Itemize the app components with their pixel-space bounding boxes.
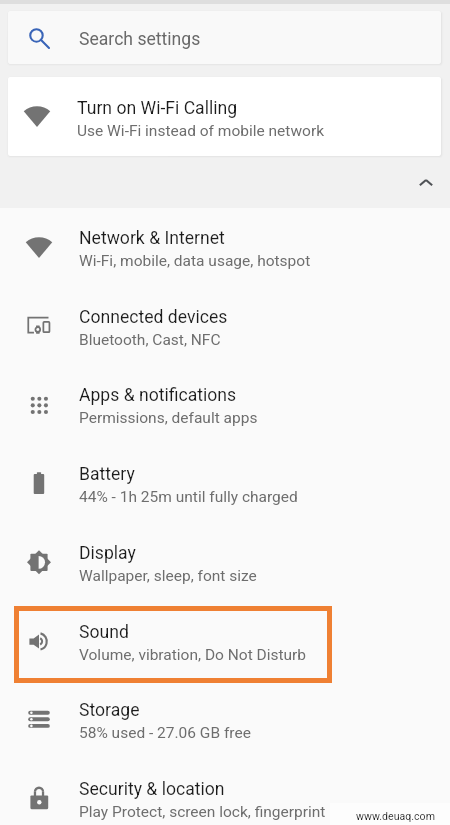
button[interactable]: Security & location xyxy=(0,759,450,825)
staticText: 44% - 1h 25m until fully charged xyxy=(79,488,298,506)
button[interactable]: Display xyxy=(0,523,450,602)
button[interactable]: Battery xyxy=(0,444,450,523)
staticText: Search settings xyxy=(79,29,201,50)
staticText: Sound xyxy=(79,622,129,643)
staticText: Network & Internet xyxy=(79,228,225,249)
staticText: Wi-Fi, mobile, data usage, hotspot xyxy=(79,252,311,270)
staticText: Apps & notifications xyxy=(79,385,237,406)
staticText: Volume, vibration, Do Not Disturb xyxy=(79,646,307,664)
button[interactable]: Sound xyxy=(0,602,450,681)
staticText: Connected devices xyxy=(79,307,228,328)
button[interactable]: Search settings xyxy=(8,11,441,64)
staticText: Turn on Wi-Fi Calling xyxy=(77,98,238,119)
button[interactable]: Connected devices xyxy=(0,287,450,366)
button[interactable]: Network & Internet xyxy=(0,208,450,287)
staticText: 58% used - 27.06 GB free xyxy=(79,724,251,742)
staticText: Play Protect, screen lock, fingerprint xyxy=(79,803,326,821)
button[interactable]: Collapse xyxy=(406,163,446,203)
button[interactable]: Turn on Wi-Fi Calling xyxy=(8,77,441,156)
staticText: Display xyxy=(79,543,136,564)
staticText: Use Wi-Fi instead of mobile network xyxy=(77,122,324,140)
staticText: Wallpaper, sleep, font size xyxy=(79,567,257,585)
staticText: www.deuaq.com xyxy=(356,810,435,822)
staticText: Storage xyxy=(79,700,140,721)
staticText: Bluetooth, Cast, NFC xyxy=(79,331,221,349)
button[interactable]: Storage xyxy=(0,680,450,759)
staticText: Battery xyxy=(79,464,135,485)
staticText: Security & location xyxy=(79,779,225,800)
button[interactable]: Apps & notifications xyxy=(0,365,450,444)
staticText: Permissions, default apps xyxy=(79,409,258,427)
